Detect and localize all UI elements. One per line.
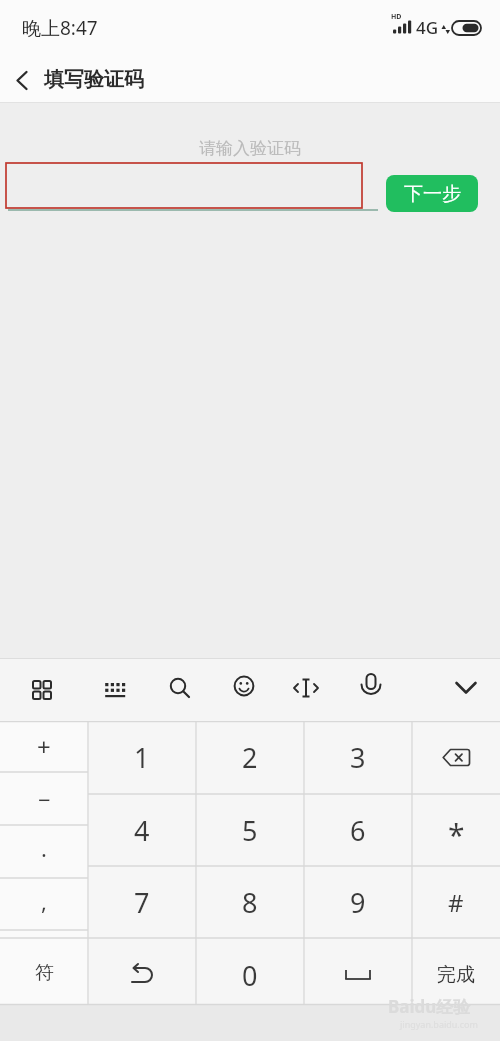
staticText: 下一步 — [404, 182, 461, 206]
staticText: HD — [391, 12, 402, 22]
staticText: 4G — [416, 16, 439, 39]
button[interactable] — [162, 670, 198, 706]
staticText: 5 — [242, 812, 258, 849]
staticText: 0 — [242, 957, 258, 994]
staticText: 7 — [134, 884, 150, 921]
button[interactable]: 6 — [304, 794, 412, 866]
button[interactable] — [353, 668, 389, 704]
button[interactable]: 4 — [88, 794, 196, 866]
staticText: 请输入验证码 — [199, 138, 301, 159]
button[interactable]: + — [0, 721, 88, 772]
button[interactable]: 9 — [304, 866, 412, 938]
button[interactable] — [412, 721, 500, 794]
button[interactable]: 0 — [196, 938, 304, 1012]
button[interactable] — [8, 66, 40, 96]
button[interactable]: 3 — [304, 721, 412, 794]
button[interactable]: 8 — [196, 866, 304, 938]
staticText: 4 — [134, 812, 150, 849]
staticText: 填写验证码 — [44, 67, 144, 92]
staticText: 8 — [242, 884, 258, 921]
staticText: 符 — [35, 961, 54, 985]
staticText: 6 — [350, 812, 366, 849]
button[interactable] — [97, 672, 133, 708]
staticText: Baidu经验 — [388, 995, 471, 1018]
staticText: + — [37, 730, 51, 763]
button[interactable]: 下一步 — [386, 175, 478, 212]
button[interactable]: 5 — [196, 794, 304, 866]
button[interactable] — [288, 670, 324, 706]
button[interactable]: 7 — [88, 866, 196, 938]
staticText: jingyan.baidu.com — [400, 1018, 478, 1030]
staticText: − — [38, 784, 51, 814]
staticText: * — [448, 814, 465, 855]
button[interactable]: 符 — [0, 938, 88, 1008]
staticText: , — [41, 886, 47, 916]
staticText: . — [41, 833, 47, 863]
button[interactable]: , — [0, 878, 88, 931]
staticText: 9 — [350, 884, 366, 921]
staticText: 晚上8:47 — [22, 15, 98, 41]
button[interactable]: 2 — [196, 721, 304, 794]
button[interactable] — [446, 672, 486, 704]
staticText: 完成 — [437, 963, 475, 987]
staticText: # — [448, 886, 464, 919]
button[interactable]: 1 — [88, 721, 196, 794]
button[interactable] — [226, 668, 262, 704]
button[interactable] — [88, 938, 196, 1012]
button[interactable] — [304, 938, 412, 1012]
staticText: 1 — [134, 739, 150, 776]
button[interactable]: # — [412, 866, 500, 938]
button[interactable]: − — [0, 772, 88, 825]
button[interactable]: . — [0, 825, 88, 878]
button[interactable]: 完成 — [412, 938, 500, 1012]
button[interactable] — [24, 672, 60, 708]
staticText: 3 — [350, 739, 366, 776]
staticText: 2 — [242, 739, 258, 776]
button[interactable]: * — [412, 794, 500, 866]
